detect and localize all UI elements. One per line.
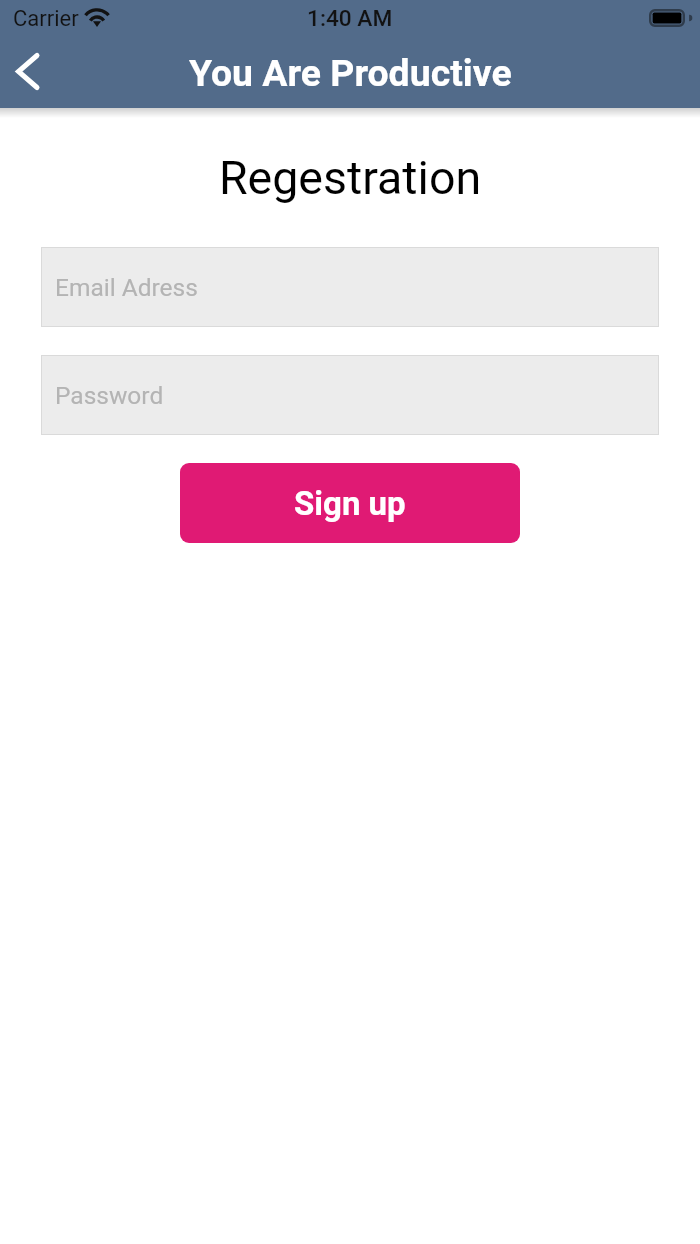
staticText: Regestration (0, 151, 700, 205)
staticText: You Are Productive (189, 51, 512, 95)
staticText: Sign up (294, 484, 406, 523)
staticText: Email Adress (55, 273, 198, 302)
button[interactable]: Back (0, 37, 56, 108)
staticText: Carrier (13, 6, 79, 32)
button[interactable]: Email Adress (41, 247, 659, 327)
button[interactable]: Sign up (180, 463, 520, 543)
staticText: Password (55, 381, 164, 410)
staticText: 1:40 AM (307, 5, 393, 32)
button[interactable]: Password (41, 355, 659, 435)
